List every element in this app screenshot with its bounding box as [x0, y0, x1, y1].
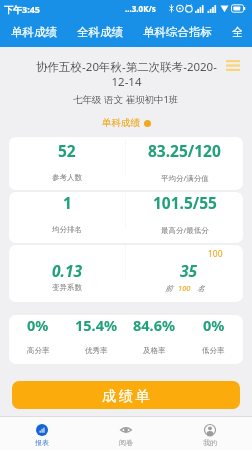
staticText: 我的: [203, 438, 217, 447]
button[interactable]: 1: [9, 192, 243, 243]
staticText: 平均分/满分值: [161, 173, 209, 183]
staticText: 15.4%: [75, 315, 118, 335]
staticText: 最高分/最低分: [161, 225, 209, 235]
staticText: 变异系数: [52, 283, 82, 292]
staticText: 七年级 语文 崔坝初中1班: [73, 93, 179, 106]
button[interactable]: 0%: [9, 315, 243, 364]
staticText: 高分率: [27, 346, 50, 355]
staticText: 低分率: [202, 346, 225, 355]
button[interactable]: 全科成绩: [67, 17, 133, 47]
staticText: 0.13: [52, 260, 83, 281]
staticText: 参考人数: [52, 173, 82, 182]
staticText: 全科: [232, 25, 242, 39]
staticText: 0%: [203, 315, 225, 335]
staticText: 优秀率: [85, 346, 108, 355]
staticText: 前: [165, 284, 173, 293]
button[interactable]: 0.13: [9, 245, 243, 302]
button[interactable]: 阅卷: [84, 416, 168, 450]
staticText: 协作五校-20年秋-第二次联考-2020- 12-14: [36, 59, 217, 89]
button[interactable]: 全科: [222, 17, 252, 47]
staticText: 52: [58, 140, 76, 161]
button[interactable]: 52: [9, 137, 243, 190]
staticText: 35: [180, 260, 198, 281]
staticText: 1: [63, 192, 72, 213]
staticText: 单科综合指标: [143, 25, 212, 39]
button[interactable]: 单科成绩: [1, 17, 67, 47]
staticText: 成绩单: [102, 387, 153, 405]
staticText: 101.5/55: [153, 192, 217, 213]
button[interactable]: 单科综合指标: [133, 17, 222, 47]
staticText: 下午3:45: [4, 3, 40, 15]
button[interactable]: 报表: [0, 416, 84, 450]
staticText: 单科成绩: [11, 25, 57, 39]
staticText: 及格率: [143, 346, 166, 355]
staticText: 名: [197, 284, 205, 293]
button[interactable]: 我的: [168, 416, 252, 450]
button[interactable]: 成绩单: [12, 381, 240, 409]
staticText: 单科成绩: [102, 117, 140, 129]
staticText: 全科成绩: [77, 25, 123, 39]
staticText: 83.25/120: [148, 140, 221, 161]
staticText: ...3.0K/s: [125, 3, 156, 14]
button[interactable]: Menu: [222, 54, 244, 76]
staticText: 阅卷: [119, 438, 133, 447]
staticText: 100: [208, 248, 223, 260]
staticText: 均分排名: [52, 225, 82, 234]
staticText: 100: [178, 283, 191, 293]
staticText: 报表: [35, 438, 49, 447]
staticText: 0%: [27, 315, 49, 335]
staticText: 84.6%: [133, 315, 176, 335]
